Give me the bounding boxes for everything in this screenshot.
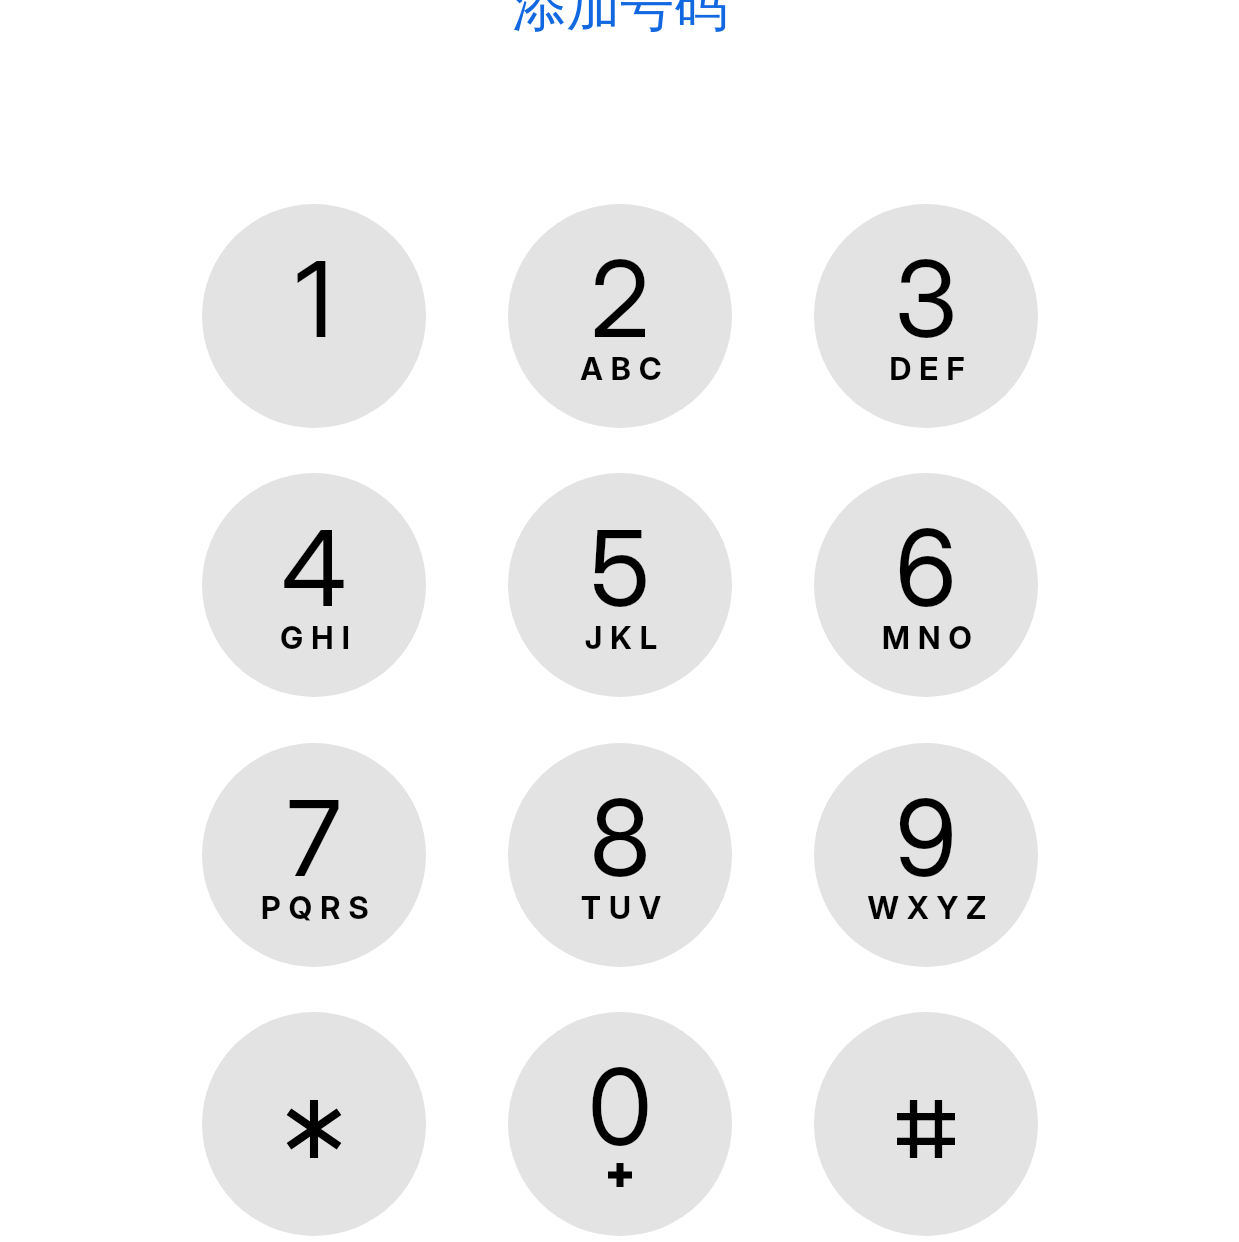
staticText: PQRS	[207, 889, 426, 927]
staticText: 6	[814, 504, 1038, 631]
staticText: 9	[814, 774, 1038, 901]
staticText: 4	[202, 504, 426, 631]
staticText: TUV	[513, 889, 732, 927]
staticText: 2	[508, 235, 732, 362]
staticText: WXYZ	[819, 889, 1038, 927]
button[interactable]: 8 T U V	[508, 743, 732, 967]
button[interactable]: 2 A B C	[508, 204, 732, 428]
staticText: 7	[202, 774, 426, 901]
staticText: ABC	[513, 350, 732, 388]
staticText: 0	[508, 1043, 732, 1170]
staticText: 1	[202, 235, 426, 362]
button[interactable]: Star	[202, 1012, 426, 1236]
button[interactable]: 3 D E F	[814, 204, 1038, 428]
button[interactable]: 0 plus	[508, 1012, 732, 1236]
staticText: 8	[508, 774, 732, 901]
button[interactable]: 4 G H I	[202, 473, 426, 697]
staticText: 添加号码	[512, 0, 728, 41]
staticText: DEF	[819, 350, 1038, 388]
staticText: MNO	[819, 619, 1038, 657]
button[interactable]: Pound	[814, 1012, 1038, 1236]
staticText: JKL	[513, 619, 732, 657]
staticText: 3	[814, 235, 1038, 362]
button[interactable]: 6 M N O	[814, 473, 1038, 697]
button[interactable]: 9 W X Y Z	[814, 743, 1038, 967]
staticText: GHI	[207, 619, 426, 657]
button[interactable]: 1	[202, 204, 426, 428]
staticText: 5	[508, 504, 732, 631]
button[interactable]: 5 J K L	[508, 473, 732, 697]
button[interactable]: 7 P Q R S	[202, 743, 426, 967]
